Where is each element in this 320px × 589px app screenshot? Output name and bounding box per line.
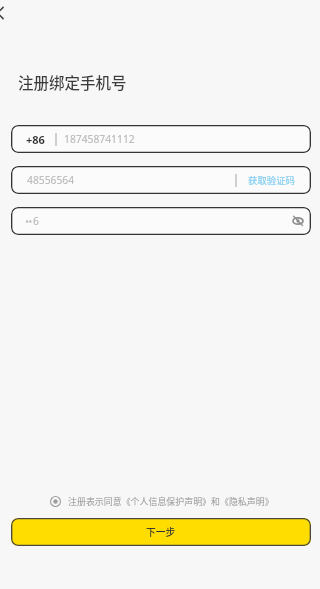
button[interactable]: +86 — [11, 125, 311, 153]
staticText: 注册绑定手机号 — [18, 71, 127, 93]
button[interactable]: 获取验证码 — [248, 173, 295, 187]
staticText: 48556564 — [27, 173, 75, 187]
button[interactable]: Back — [0, 1, 8, 25]
button[interactable]: Agree to terms — [50, 496, 61, 507]
staticText: 下一步 — [146, 525, 176, 539]
staticText: +86 — [26, 132, 45, 147]
button[interactable]: 下一步 — [11, 518, 311, 546]
staticText: 187458741112 — [64, 132, 135, 146]
staticText: 6 — [33, 214, 39, 228]
button[interactable]: Show password — [293, 216, 303, 226]
staticText: 注册表示同意《个人信息保护声明》和《隐私声明》 — [68, 495, 274, 507]
button[interactable]: 6 — [11, 207, 311, 235]
button[interactable]: 48556564 — [11, 166, 311, 194]
